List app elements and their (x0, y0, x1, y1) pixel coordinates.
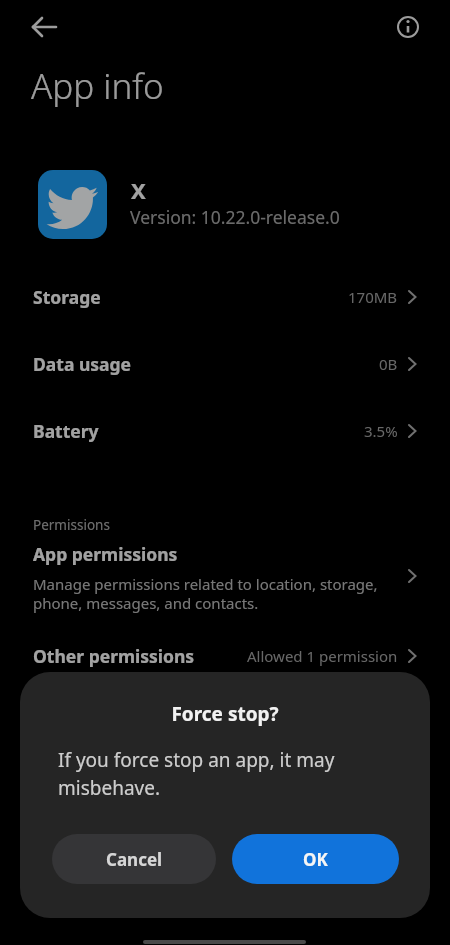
staticText: Battery (33, 419, 99, 443)
button[interactable]: OK (232, 834, 399, 884)
button[interactable] (386, 5, 430, 49)
staticText: 0B (379, 354, 398, 374)
staticText: Permissions (33, 516, 110, 534)
staticText: Version: 10.22.0-release.0 (130, 205, 340, 229)
button[interactable]: Other permissions (0, 623, 450, 689)
button[interactable] (21, 5, 65, 49)
button[interactable]: Cancel (52, 834, 216, 884)
button[interactable]: Storage (0, 264, 450, 330)
staticText: Allowed 1 permission (247, 646, 398, 666)
staticText: OK (303, 848, 328, 871)
button[interactable]: Battery (0, 398, 450, 464)
button[interactable]: App permissions (0, 538, 450, 614)
staticText: Other permissions (33, 644, 195, 668)
staticText: X (131, 175, 146, 205)
staticText: 170MB (348, 287, 398, 307)
staticText: App info (31, 62, 164, 110)
staticText: Force stop? (20, 701, 430, 727)
staticText: Storage (33, 285, 101, 309)
staticText: Cancel (106, 848, 163, 871)
button[interactable]: Data usage (0, 331, 450, 397)
staticText: App permissions (33, 542, 178, 566)
staticText: 3.5% (364, 421, 398, 441)
staticText: Data usage (33, 352, 132, 376)
staticText: If you force stop an app, it may misbeha… (58, 747, 335, 800)
staticText: Manage permissions related to location, … (33, 574, 378, 614)
